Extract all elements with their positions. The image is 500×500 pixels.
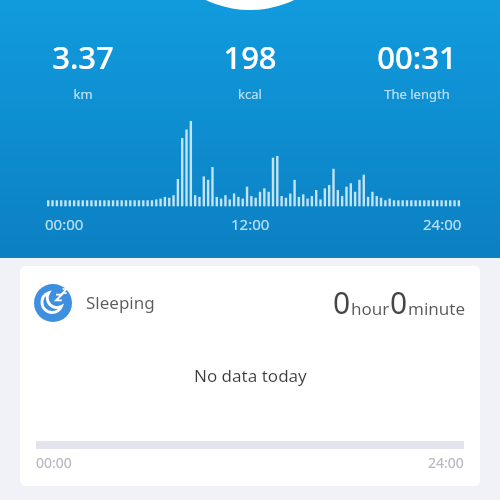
button[interactable]: 3.37 (0, 36, 166, 103)
button[interactable]: Sleeping (20, 266, 480, 486)
staticText: 00:31 (377, 36, 457, 78)
staticText: 00:00 (45, 214, 84, 234)
staticText: The length (384, 85, 450, 103)
staticText: 00:00 (36, 453, 72, 472)
staticText: 24:00 (423, 214, 462, 234)
staticText: 3.37 (52, 36, 114, 78)
staticText: km (73, 85, 93, 103)
staticText: hour (351, 297, 390, 320)
staticText: 24:00 (428, 453, 464, 472)
staticText: 0 (390, 282, 408, 323)
button[interactable]: 00:31 (333, 36, 500, 103)
staticText: Sleeping (86, 291, 155, 314)
staticText: 12:00 (231, 214, 270, 234)
staticText: minute (408, 297, 466, 320)
staticText: kcal (238, 85, 262, 103)
staticText: 198 (223, 36, 277, 78)
staticText: No data today (194, 364, 307, 387)
other: Sleeping (34, 284, 72, 322)
staticText: 0 (333, 282, 351, 323)
button[interactable]: 198 (166, 36, 333, 103)
